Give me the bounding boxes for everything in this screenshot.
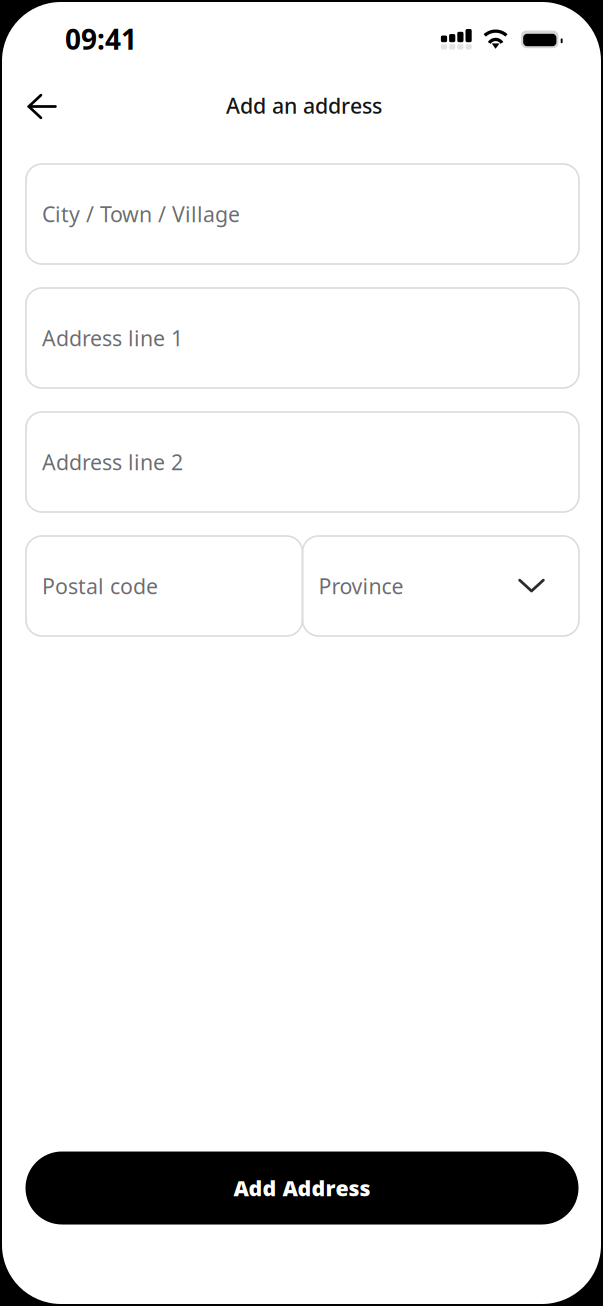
staticText: Add Address [233, 1174, 370, 1202]
button[interactable]: Address line 1 [26, 288, 579, 388]
button[interactable]: Add Address [25, 1151, 578, 1224]
staticText: City / Town / Village [42, 200, 240, 228]
button[interactable]: Postal code [26, 536, 302, 636]
staticText: Address line 1 [42, 324, 183, 352]
staticText: Postal code [42, 572, 158, 600]
staticText: 09:41 [65, 20, 137, 58]
staticText: Address line 2 [42, 448, 183, 476]
staticText: Province [318, 572, 403, 600]
button[interactable]: Address line 2 [26, 412, 579, 512]
button[interactable]: Back [18, 83, 66, 129]
button[interactable]: Province [302, 536, 579, 636]
button[interactable]: City / Town / Village [26, 164, 579, 264]
staticText: Add an address [226, 91, 382, 120]
